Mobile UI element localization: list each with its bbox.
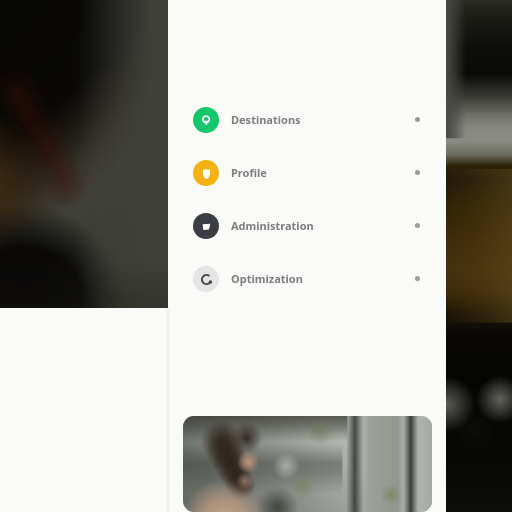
- staticText: Destinations: [231, 112, 301, 127]
- button[interactable]: Optimization: [168, 252, 446, 305]
- staticText: Profile: [231, 165, 267, 180]
- button[interactable]: Destinations: [168, 93, 446, 146]
- staticText: Administration: [231, 218, 314, 233]
- button[interactable]: Profile: [168, 146, 446, 199]
- button[interactable]: Featured photo: [183, 416, 432, 512]
- staticText: Optimization: [231, 271, 303, 286]
- button[interactable]: Administration: [168, 199, 446, 252]
